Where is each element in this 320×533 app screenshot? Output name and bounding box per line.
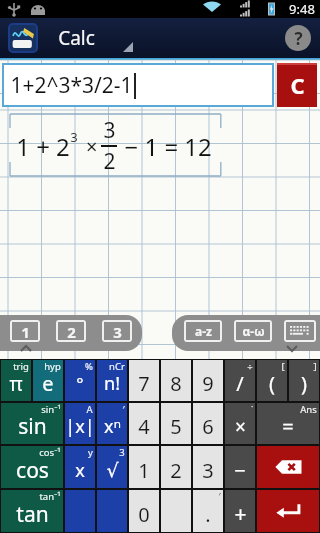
staticText: sin⁻¹ — [41, 403, 61, 416]
button[interactable]: 5 — [161, 403, 191, 444]
staticText: 3 — [202, 457, 214, 484]
button[interactable]: 3 — [193, 446, 223, 488]
staticText: sin — [18, 412, 47, 441]
staticText: tan⁻¹ — [39, 490, 61, 503]
staticText: cos⁻¹ — [39, 446, 61, 459]
staticText: ) — [301, 370, 307, 397]
staticText: A — [86, 403, 93, 416]
button[interactable]: ÷ — [225, 360, 255, 401]
button[interactable]: α-ω — [236, 322, 270, 340]
staticText: 3 — [119, 446, 125, 459]
button[interactable]: Keyboard — [286, 322, 314, 340]
button[interactable]: 2 — [161, 446, 191, 488]
staticText: + — [234, 500, 247, 529]
staticText: trig — [13, 360, 29, 373]
staticText: √ — [106, 459, 119, 481]
button[interactable]: App icon — [8, 23, 38, 53]
button[interactable]: 1 — [129, 446, 159, 488]
button[interactable]: nCr — [97, 360, 127, 401]
staticText: 3 — [113, 322, 122, 340]
staticText: 2 — [170, 457, 182, 484]
button[interactable]: 2 — [58, 322, 84, 340]
staticText: tan — [16, 500, 49, 529]
staticText: α-ω — [242, 323, 265, 339]
button[interactable]: ˙ — [225, 403, 255, 444]
staticText: e — [42, 370, 54, 397]
button[interactable]: % — [65, 360, 95, 401]
button[interactable]: A — [65, 403, 95, 444]
button[interactable]: Help — [285, 25, 311, 51]
button[interactable]: − — [225, 446, 255, 488]
staticText: ÷ — [247, 360, 253, 373]
staticText: y — [88, 446, 93, 459]
button[interactable]: 4 — [129, 403, 159, 444]
staticText: ° — [76, 372, 84, 395]
button[interactable]: y — [65, 446, 95, 488]
staticText: ] — [313, 360, 317, 373]
button[interactable]: ′ — [97, 403, 127, 444]
button[interactable]: 6 — [193, 403, 223, 444]
staticText: 7 — [138, 370, 150, 397]
staticText: ′ — [218, 490, 221, 503]
button[interactable]: Enter — [257, 490, 319, 532]
button[interactable]: [ — [257, 360, 287, 401]
button[interactable]: tan⁻¹ — [1, 490, 63, 532]
staticText: 1 + 2 — [16, 130, 70, 163]
staticText: % — [85, 360, 93, 373]
button[interactable]: cos⁻¹ — [1, 446, 63, 488]
button[interactable]: 1 — [12, 322, 38, 340]
button[interactable]: 0 — [129, 490, 159, 532]
button[interactable]: ′ — [193, 490, 223, 532]
staticText: Calc — [58, 25, 95, 51]
button[interactable]: 9 — [193, 360, 223, 401]
staticText: 0 — [138, 501, 150, 528]
staticText: = — [282, 413, 294, 440]
button[interactable]: 3 — [97, 446, 127, 488]
staticText: a-z — [195, 323, 212, 339]
button[interactable]: 3 — [104, 322, 130, 340]
staticText: . — [205, 501, 211, 528]
staticText: [ — [281, 360, 285, 373]
staticText: ? — [294, 27, 303, 50]
staticText: ˙ — [251, 403, 253, 416]
staticText: × — [235, 414, 246, 440]
staticText: − 1 = 12 — [118, 130, 212, 163]
staticText: 3 — [103, 116, 116, 145]
staticText: nCr — [109, 360, 125, 373]
staticText: hyp — [44, 360, 61, 373]
staticText: 5 — [170, 413, 182, 440]
staticText: / — [236, 370, 244, 397]
button[interactable]: sin⁻¹ — [1, 403, 63, 444]
staticText: xⁿ — [104, 414, 121, 439]
staticText: 4 — [138, 413, 150, 440]
staticText: 9:48 — [289, 0, 315, 18]
button[interactable]: C — [277, 63, 317, 107]
button[interactable]: a-z — [186, 322, 220, 340]
staticText: 1 — [138, 457, 150, 484]
button[interactable]: Ans — [257, 403, 319, 444]
staticText: ′ — [122, 403, 125, 416]
staticText: 1 — [21, 322, 30, 340]
staticText: π — [9, 370, 23, 397]
staticText: Ans — [300, 403, 317, 416]
staticText: ( — [269, 370, 275, 397]
staticText: cos — [16, 456, 49, 485]
button[interactable]: Backspace — [257, 446, 319, 488]
staticText: 6 — [202, 413, 214, 440]
button[interactable]: + — [225, 490, 255, 532]
button[interactable]: 7 — [129, 360, 159, 401]
button[interactable]: trig — [1, 360, 31, 401]
staticText: x — [75, 458, 85, 483]
button[interactable]: hyp — [33, 360, 63, 401]
button[interactable]: 1+2^3*3/2-1 — [4, 65, 272, 105]
button[interactable]: 8 — [161, 360, 191, 401]
staticText: × — [78, 133, 100, 160]
staticText: 3 — [70, 128, 78, 146]
staticText: 2 — [67, 322, 76, 340]
staticText: 8 — [170, 370, 182, 397]
button[interactable]: ] — [289, 360, 319, 401]
staticText: C — [290, 70, 305, 100]
